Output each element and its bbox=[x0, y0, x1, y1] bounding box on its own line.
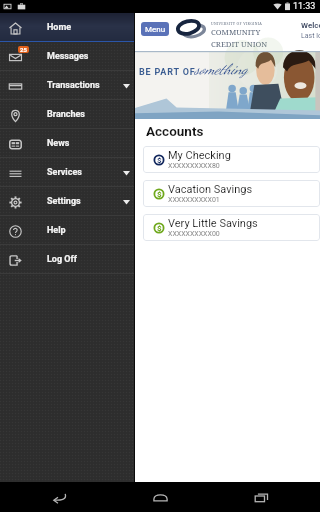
button[interactable]: 25 bbox=[0, 42, 134, 71]
staticText: Log Off bbox=[47, 254, 77, 265]
staticText: Very Little Savings bbox=[168, 217, 258, 230]
staticText: My Checking bbox=[168, 149, 231, 162]
staticText: 11:33 bbox=[293, 1, 316, 12]
staticText: UNIVERSITY OF VIRGINIA bbox=[211, 21, 263, 26]
staticText: News bbox=[47, 138, 70, 149]
button[interactable]: Home bbox=[0, 13, 134, 42]
button[interactable]: Log Off bbox=[0, 245, 134, 274]
staticText: XXXXXXXXXX00 bbox=[168, 230, 220, 238]
staticText: $ bbox=[157, 156, 162, 165]
button[interactable]: News bbox=[0, 129, 134, 158]
staticText: Settings bbox=[47, 196, 81, 207]
button[interactable]: Settings bbox=[0, 187, 134, 216]
staticText: Menu bbox=[145, 25, 166, 34]
button[interactable]: Menu bbox=[141, 22, 169, 36]
button[interactable]: Home bbox=[143, 482, 177, 512]
staticText: $ bbox=[157, 224, 162, 233]
staticText: COMMUNITY bbox=[211, 27, 261, 38]
button[interactable]: $ bbox=[143, 214, 320, 241]
staticText: Transactions bbox=[47, 80, 100, 91]
staticText: Home bbox=[47, 22, 72, 33]
button[interactable]: $ bbox=[143, 180, 320, 207]
button[interactable]: Recent apps bbox=[244, 482, 278, 512]
staticText: Branches bbox=[47, 109, 85, 120]
staticText: Welcome bbox=[301, 21, 320, 30]
button[interactable]: Services bbox=[0, 158, 134, 187]
staticText: XXXXXXXXXX80 bbox=[168, 162, 220, 170]
staticText: CREDIT UNION bbox=[211, 39, 268, 50]
staticText: Last login bbox=[301, 32, 320, 40]
button[interactable]: Back bbox=[42, 482, 76, 512]
staticText: Vacation Savings bbox=[168, 183, 253, 196]
button[interactable]: Branches bbox=[0, 100, 134, 129]
staticText: BE PART OF bbox=[139, 67, 196, 78]
button[interactable]: $ bbox=[143, 146, 320, 173]
staticText: Messages bbox=[47, 51, 89, 62]
staticText: Services bbox=[47, 167, 82, 178]
staticText: 25 bbox=[20, 46, 27, 53]
staticText: Accounts bbox=[146, 123, 204, 139]
button[interactable]: Help bbox=[0, 216, 134, 245]
staticText: XXXXXXXXXX01 bbox=[168, 196, 220, 204]
staticText: something bbox=[194, 60, 248, 78]
staticText: Help bbox=[47, 225, 66, 236]
staticText: $ bbox=[157, 190, 162, 199]
button[interactable]: Transactions bbox=[0, 71, 134, 100]
